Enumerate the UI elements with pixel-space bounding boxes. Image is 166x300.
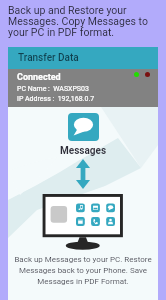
staticText: Back up Messages to your PC. Restore Mes… xyxy=(14,255,152,286)
staticText: Transfer Data xyxy=(18,52,79,64)
button[interactable]: Messages xyxy=(68,113,99,141)
staticText: Back up and Restore your Messages. Copy … xyxy=(8,4,160,39)
staticText: PC Name : WASXPS03 xyxy=(17,85,89,93)
staticText: Connected xyxy=(17,72,61,83)
staticText: IP Address : 192,168.0.7 xyxy=(17,95,95,103)
button[interactable]: Transfer Data xyxy=(8,47,158,69)
staticText: Messages xyxy=(60,145,107,157)
